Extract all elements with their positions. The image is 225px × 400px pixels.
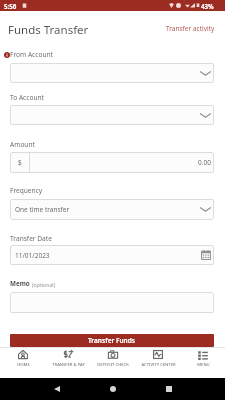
staticText: Funds Transfer [8,22,89,38]
staticText: Transfer Date [10,234,52,243]
staticText: 11/01/2023 [15,251,50,260]
button[interactable]: $ [10,152,214,173]
staticText: 43% [201,2,214,10]
staticText: Frequency [10,186,43,195]
staticText: 5:56 [4,2,17,10]
staticText: HOME [17,362,30,368]
staticText: MENU [197,362,210,368]
staticText: Transfer Funds [88,336,136,345]
button[interactable]: DEPOSIT CHECK [92,348,134,368]
staticText: (optional) [32,281,56,288]
staticText: Transfer activity [166,24,215,33]
button[interactable]: Transfer activity [163,21,218,36]
staticText: 0.00 [198,158,211,167]
button[interactable]: Transfer Funds [10,334,214,347]
staticText: DEPOSIT CHECK [97,362,129,368]
button[interactable]: ACTIVITY CENTER [137,348,179,368]
staticText: To Account [10,93,44,102]
staticText: $ [18,158,22,167]
button[interactable] [10,292,214,313]
staticText: Amount [10,140,35,149]
staticText: ACTIVITY CENTER [141,362,176,368]
button[interactable]: HOME [2,348,44,368]
button[interactable] [10,63,214,83]
staticText: Memo [10,279,30,288]
button[interactable] [10,105,214,125]
button[interactable]: MENU [182,348,224,368]
staticText: One time transfer [15,205,70,214]
button[interactable]: 11/01/2023 [10,245,214,265]
staticText: TRANSFER & PAY [52,362,85,368]
staticText: From Account [10,50,53,59]
button[interactable]: One time transfer [10,199,214,220]
button[interactable]: TRANSFER & PAY [47,348,89,368]
